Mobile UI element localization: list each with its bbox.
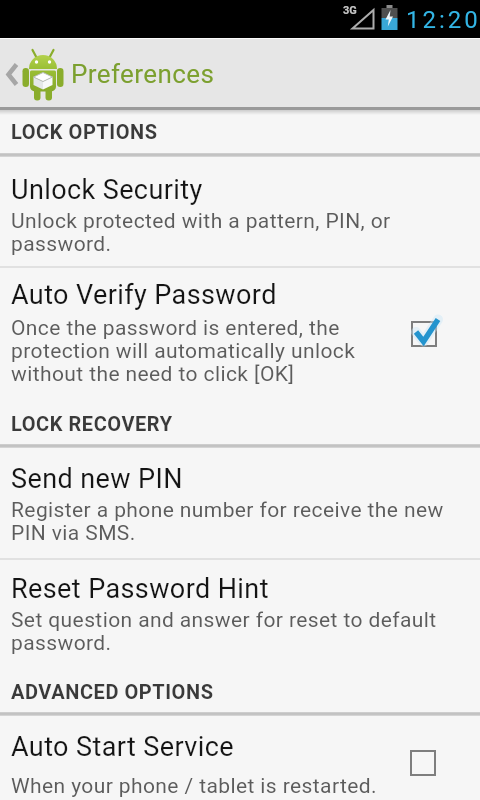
staticText: Unlock protected with a pattern, PIN, or… — [11, 209, 391, 257]
staticText: LOCK RECOVERY — [11, 412, 173, 435]
staticText: 12:20 — [406, 6, 480, 34]
staticText: ADVANCED OPTIONS — [11, 680, 214, 703]
button[interactable] — [0, 560, 480, 660]
staticText: 3G — [343, 4, 357, 17]
staticText: Reset Password Hint — [11, 573, 269, 605]
staticText: Auto Start Service — [11, 731, 234, 763]
button[interactable] — [0, 268, 480, 404]
staticText: Unlock Security — [11, 174, 203, 206]
staticText: LOCK OPTIONS — [11, 120, 158, 143]
staticText: Auto Verify Password — [11, 279, 277, 311]
staticText: Preferences — [71, 59, 215, 89]
staticText: Once the password is entered, the protec… — [11, 316, 356, 387]
button[interactable] — [407, 745, 443, 781]
staticText: Set question and answer for reset to def… — [11, 608, 437, 656]
button[interactable] — [408, 316, 444, 352]
button[interactable] — [0, 716, 480, 800]
button[interactable] — [0, 38, 230, 107]
button[interactable] — [0, 157, 480, 266]
staticText: Send new PIN — [11, 463, 183, 495]
button[interactable] — [0, 448, 480, 560]
staticText: Register a phone number for receive the … — [11, 498, 444, 546]
staticText: When your phone / tablet is restarted. — [11, 774, 377, 799]
